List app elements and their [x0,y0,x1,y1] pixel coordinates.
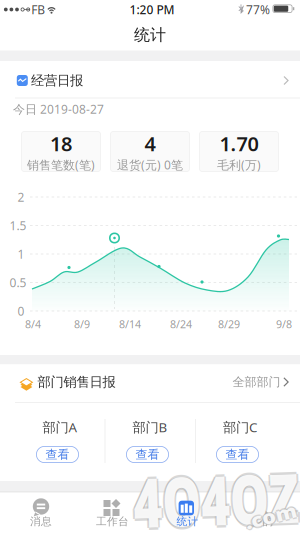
staticText: 工作台 [96,515,129,528]
staticText: 部门销售日报 [37,374,115,390]
staticText: 1 [17,246,24,262]
staticText: 18 [50,130,72,157]
staticText: 1:20 PM [129,1,174,17]
staticText: 8/9 [74,317,90,331]
staticText: 2 [17,189,24,205]
staticText: 8/14 [119,317,141,331]
staticText: 0.5 [9,274,26,290]
button[interactable]: 部门销售日报 [0,364,300,402]
staticText: 1.5 [9,217,26,233]
staticText: 经营日报 [31,72,83,89]
staticText: 查看 [225,447,249,462]
staticText: 退货(元) 0笔 [117,157,183,173]
button[interactable]: 查看 [36,446,79,463]
staticText: 4O4OZ [144,469,288,526]
staticText: 77% [246,1,270,17]
staticText: 8/24 [170,317,192,331]
staticText: 4O4OZ [144,472,288,529]
staticText: 查看 [135,447,159,462]
button[interactable]: 工作台 [75,492,150,533]
staticText: .com [249,504,295,528]
button[interactable]: 查看 [126,446,169,463]
staticText: 4O4OZ [144,471,288,527]
staticText: 1.70 [219,130,258,157]
staticText: 消息 [30,515,52,528]
staticText: 销售笔数(笔) [27,157,95,173]
staticText: 0 [17,303,24,319]
button[interactable]: 经营日报 [0,61,300,98]
staticText: 查看 [45,447,69,462]
staticText: 毛利(万) [217,157,261,173]
button[interactable]: 我的 [225,492,300,533]
staticText: 8/4 [25,317,41,331]
staticText: 部门B [132,418,167,436]
staticText: FB [31,1,45,17]
staticText: 统计 [134,25,166,45]
staticText: 部门C [223,418,257,436]
staticText: 4 [144,130,155,157]
staticText: 8/29 [218,317,240,331]
staticText: 全部部门 [232,375,280,389]
staticText: 我的 [251,515,273,528]
staticText: .com [248,504,294,528]
button[interactable]: 消息 [3,492,78,533]
staticText: 今日 2019-08-27 [13,101,104,117]
staticText: 部门A [42,418,77,436]
button[interactable]: 查看 [216,446,259,463]
staticText: 4O4OZ [143,471,287,527]
staticText: 9/8 [276,317,292,331]
staticText: .com [248,505,294,530]
button[interactable]: 统计 [150,492,225,533]
staticText: 统计 [176,515,198,528]
staticText: .com [247,504,293,528]
staticText: 4O4OZ [145,471,289,527]
staticText: .com [248,502,294,527]
